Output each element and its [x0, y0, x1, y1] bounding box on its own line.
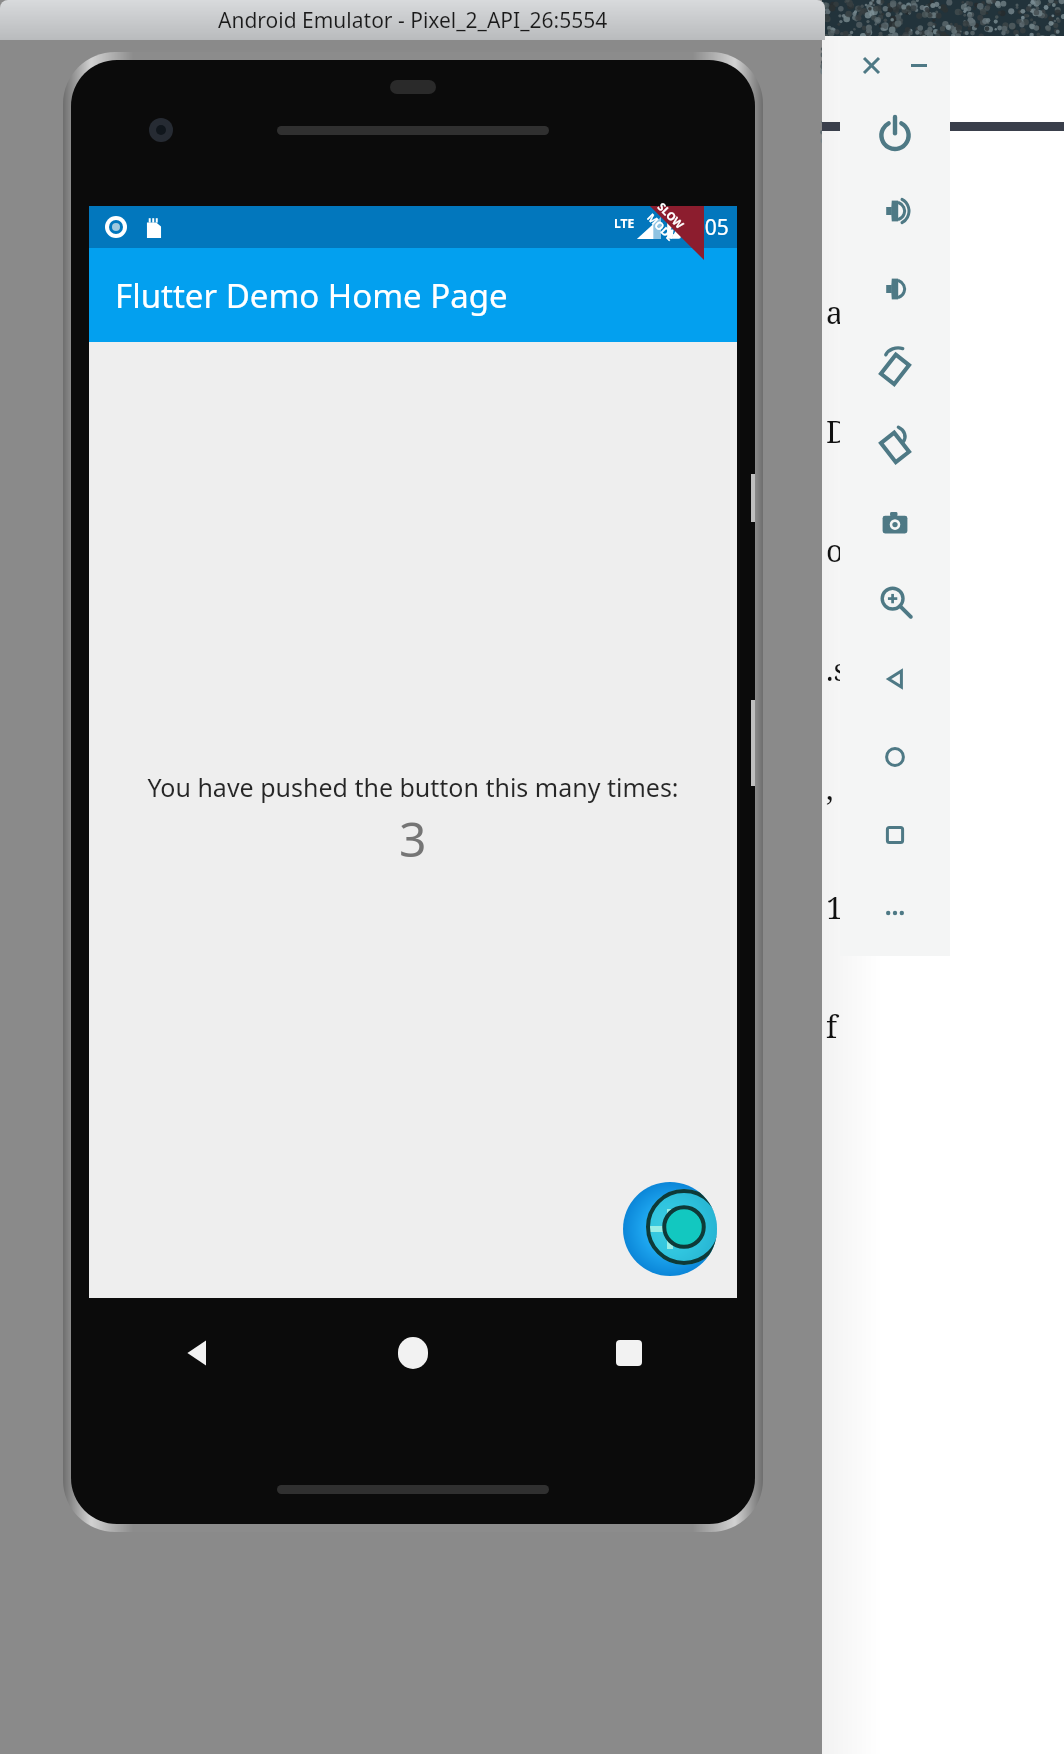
staticText: , [826, 768, 834, 809]
staticText: You have pushed the button this many tim… [147, 770, 679, 804]
staticText: SLOW MODE [644, 199, 712, 267]
staticText: 1 [826, 887, 843, 928]
staticText: o [826, 530, 844, 571]
staticText: .s [826, 649, 848, 690]
button[interactable]: Take screenshot [840, 484, 950, 562]
button[interactable]: Zoom [840, 562, 950, 640]
button[interactable]: Volume down [840, 250, 950, 328]
button[interactable]: Back [840, 640, 950, 718]
button[interactable]: More [840, 874, 950, 952]
staticText: f [826, 1006, 838, 1047]
staticText: Flutter Demo Home Page [115, 273, 508, 318]
button[interactable]: Rotate right [840, 406, 950, 484]
staticText: LTE [614, 215, 635, 231]
button[interactable]: Overview [840, 796, 950, 874]
staticText: 3 [399, 806, 427, 871]
button[interactable]: Increment [623, 1182, 717, 1276]
button[interactable]: Rotate left [840, 328, 950, 406]
button[interactable]: Minimize [902, 48, 936, 82]
staticText: Android Emulator - Pixel_2_API_26:5554 [218, 6, 608, 35]
button[interactable]: Close [854, 48, 888, 82]
staticText: al [826, 292, 853, 333]
button[interactable]: Recent apps [521, 1298, 737, 1408]
button[interactable]: Back [89, 1298, 305, 1408]
staticText: D [826, 411, 848, 452]
button[interactable]: Volume up [840, 172, 950, 250]
staticText: 6:05 [687, 213, 729, 242]
button[interactable]: Home [305, 1298, 521, 1408]
button[interactable]: Home [840, 718, 950, 796]
button[interactable]: Power [840, 94, 950, 172]
